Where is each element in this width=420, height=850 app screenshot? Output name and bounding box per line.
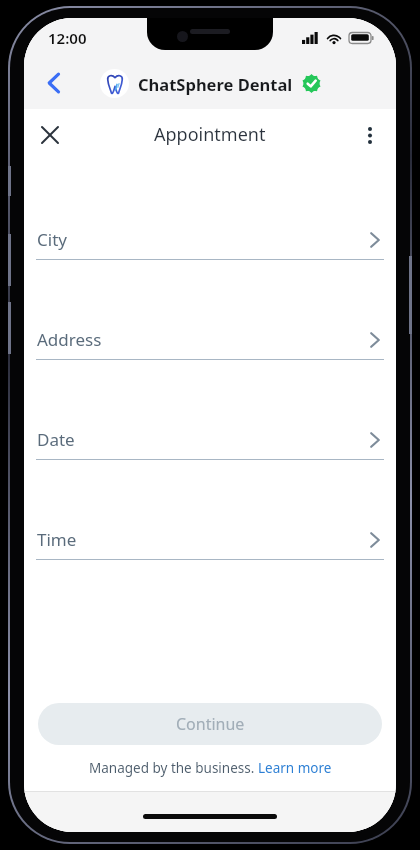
staticText: Managed by the business.	[89, 759, 258, 777]
staticText: City	[37, 228, 67, 251]
button[interactable]: Back	[34, 63, 74, 103]
button[interactable]: Time	[24, 460, 396, 560]
button[interactable]: Continue	[38, 703, 382, 745]
staticText: Address	[37, 328, 102, 351]
staticText: Appointment	[154, 122, 266, 147]
button[interactable]: City	[24, 160, 396, 260]
staticText: ChatSphere Dental	[138, 73, 293, 95]
button[interactable]: More options	[350, 115, 390, 155]
staticText: Time	[37, 528, 77, 551]
button[interactable]: Address	[24, 260, 396, 360]
staticText: 12:00	[48, 28, 87, 48]
staticText: Learn more	[258, 759, 332, 777]
button[interactable]: Learn more	[258, 759, 332, 777]
staticText: Continue	[176, 713, 245, 735]
button[interactable]: Date	[24, 360, 396, 460]
staticText: Date	[37, 428, 75, 451]
button[interactable]: Close	[28, 113, 72, 157]
